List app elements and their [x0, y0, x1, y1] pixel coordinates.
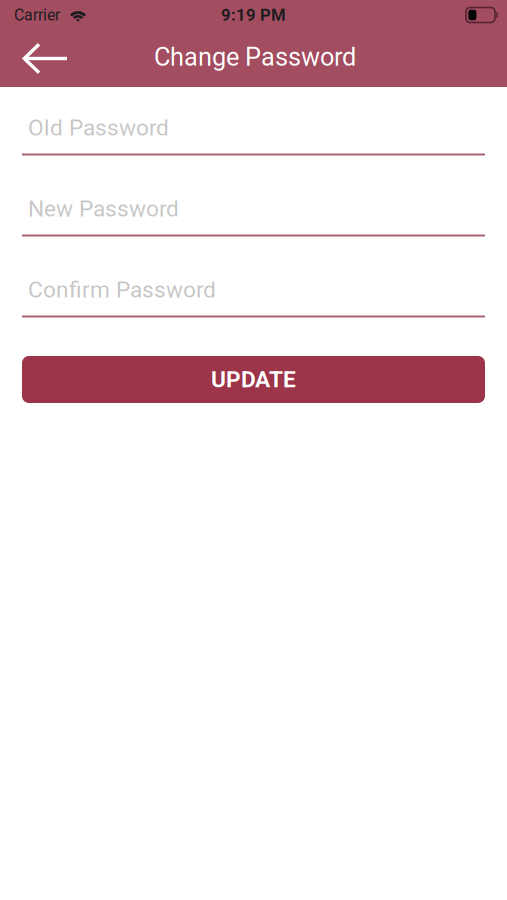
staticText: Old Password [28, 114, 169, 141]
staticText: 9:19 PM [221, 5, 286, 25]
button[interactable]: UPDATE [22, 356, 485, 403]
staticText: UPDATE [211, 366, 296, 393]
button[interactable]: New Password [0, 168, 507, 249]
staticText: Change Password [154, 42, 356, 72]
staticText: Confirm Password [28, 276, 216, 303]
button[interactable]: Old Password [0, 87, 507, 168]
staticText: Carrier [14, 6, 60, 24]
staticText: New Password [28, 195, 179, 222]
button[interactable]: Confirm Password [0, 249, 507, 330]
button[interactable]: Back [0, 30, 90, 87]
